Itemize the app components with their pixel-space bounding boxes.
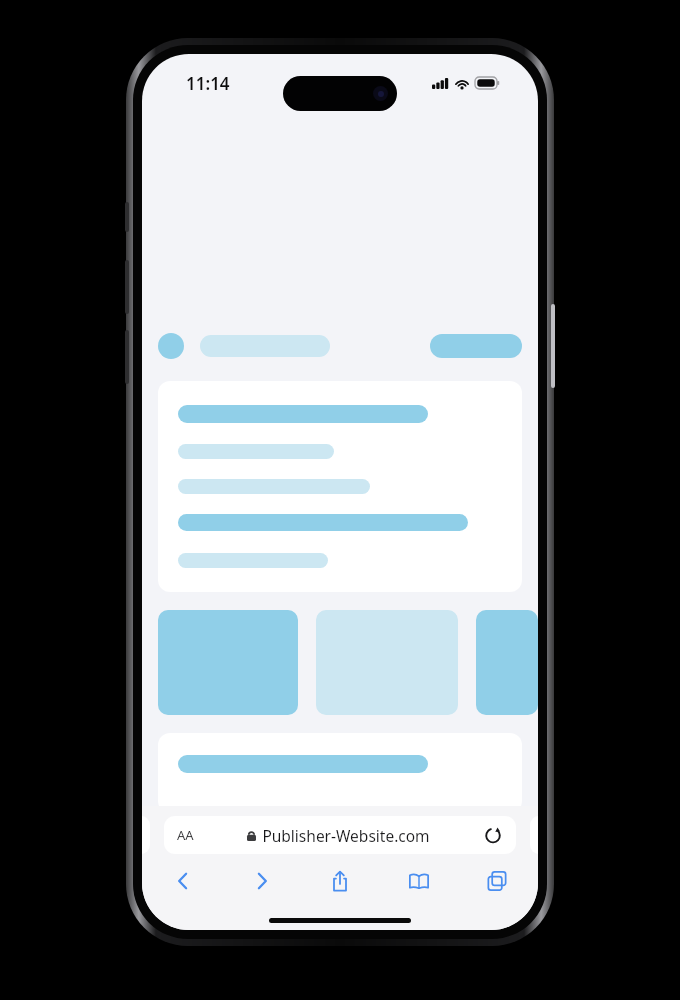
- button[interactable]: Previous tab: [142, 816, 150, 854]
- staticText: AA: [177, 826, 194, 844]
- button[interactable]: Tabs: [470, 864, 524, 898]
- button[interactable]: AA: [164, 816, 516, 854]
- button[interactable]: [158, 610, 298, 715]
- button[interactable]: Next tab: [530, 816, 538, 854]
- button[interactable]: Back: [156, 864, 210, 898]
- button[interactable]: [476, 610, 538, 715]
- staticText: Publisher-Website.com: [262, 825, 430, 846]
- staticText: 11:14: [186, 72, 230, 95]
- button[interactable]: Reload: [483, 825, 503, 845]
- button[interactable]: [158, 733, 522, 813]
- button[interactable]: Forward: [235, 864, 289, 898]
- button[interactable]: Share: [313, 864, 367, 898]
- button[interactable]: [158, 381, 522, 592]
- button[interactable]: Bookmarks: [392, 864, 446, 898]
